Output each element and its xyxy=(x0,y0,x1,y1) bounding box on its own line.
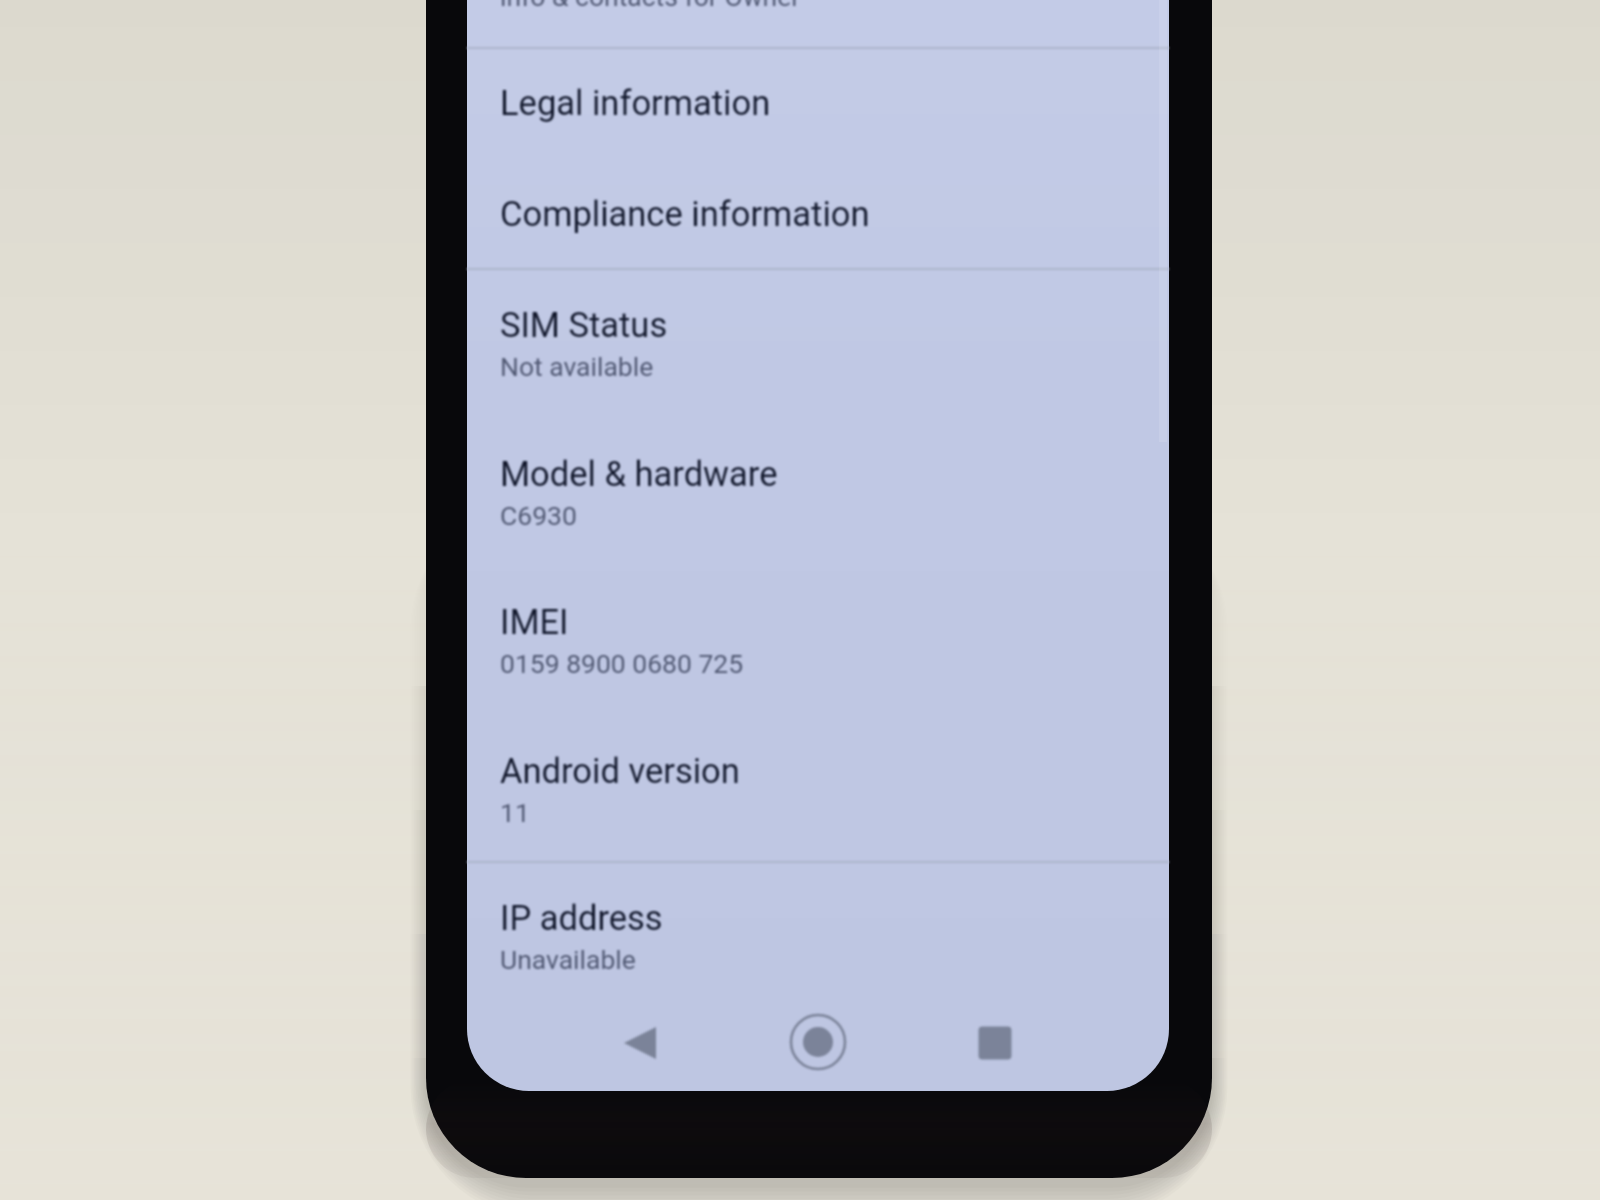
staticText: Compliance information xyxy=(500,194,870,234)
button[interactable]: Android version xyxy=(467,717,1169,866)
staticText: Model & hardware xyxy=(500,454,778,494)
button[interactable]: Model & hardware xyxy=(467,420,1169,569)
staticText: 11 xyxy=(500,797,530,828)
button[interactable]: Recent apps xyxy=(957,1005,1033,1081)
staticText: Unavailable xyxy=(500,944,636,975)
staticText: IP address xyxy=(500,898,663,938)
button[interactable]: SIM Status xyxy=(467,271,1169,420)
staticText: 0159 8900 0680 725 xyxy=(500,648,744,679)
staticText: Legal information xyxy=(500,83,771,123)
button[interactable]: Legal information xyxy=(467,49,1169,160)
staticText: C6930 xyxy=(500,500,577,531)
button[interactable]: IMEI xyxy=(467,568,1169,717)
staticText: Android version xyxy=(500,751,740,791)
staticText: Not available xyxy=(500,351,654,382)
button[interactable]: Back xyxy=(602,1005,678,1081)
staticText: info & contacts for Owner xyxy=(500,0,801,12)
button[interactable]: Compliance information xyxy=(467,160,1169,271)
button[interactable]: Home xyxy=(780,1004,856,1080)
staticText: SIM Status xyxy=(500,305,668,345)
staticText: IMEI xyxy=(500,602,569,642)
button[interactable]: IP address xyxy=(467,864,1169,1013)
